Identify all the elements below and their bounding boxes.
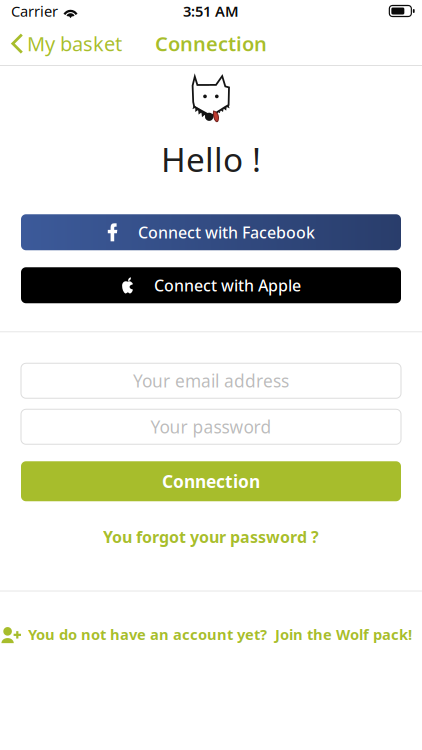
staticText: Your email address [133,369,289,392]
button[interactable]: Connect with Apple [21,267,401,303]
button[interactable]: My basket [0,23,122,64]
staticText: Connect with Facebook [138,222,315,243]
staticText: You forgot your password ? [103,526,319,547]
staticText: Your password [150,415,271,438]
staticText: Connect with Apple [154,275,301,296]
staticText: Connection [162,470,260,493]
staticText: Carrier [11,1,58,21]
button[interactable]: You forgot your password ? [103,520,319,553]
button[interactable]: Connect with Facebook [21,214,401,250]
button[interactable]: You do not have an account yet? Join the… [0,620,422,648]
staticText: My basket [27,30,122,57]
staticText: Hello ! [161,137,261,181]
staticText: You do not have an account yet? Join the… [28,624,412,644]
button[interactable]: Your password [21,409,401,444]
button[interactable]: Connection [21,461,401,501]
staticText: Connection [155,30,267,57]
staticText: 3:51 AM [183,1,239,21]
button[interactable]: Your email address [21,363,401,398]
